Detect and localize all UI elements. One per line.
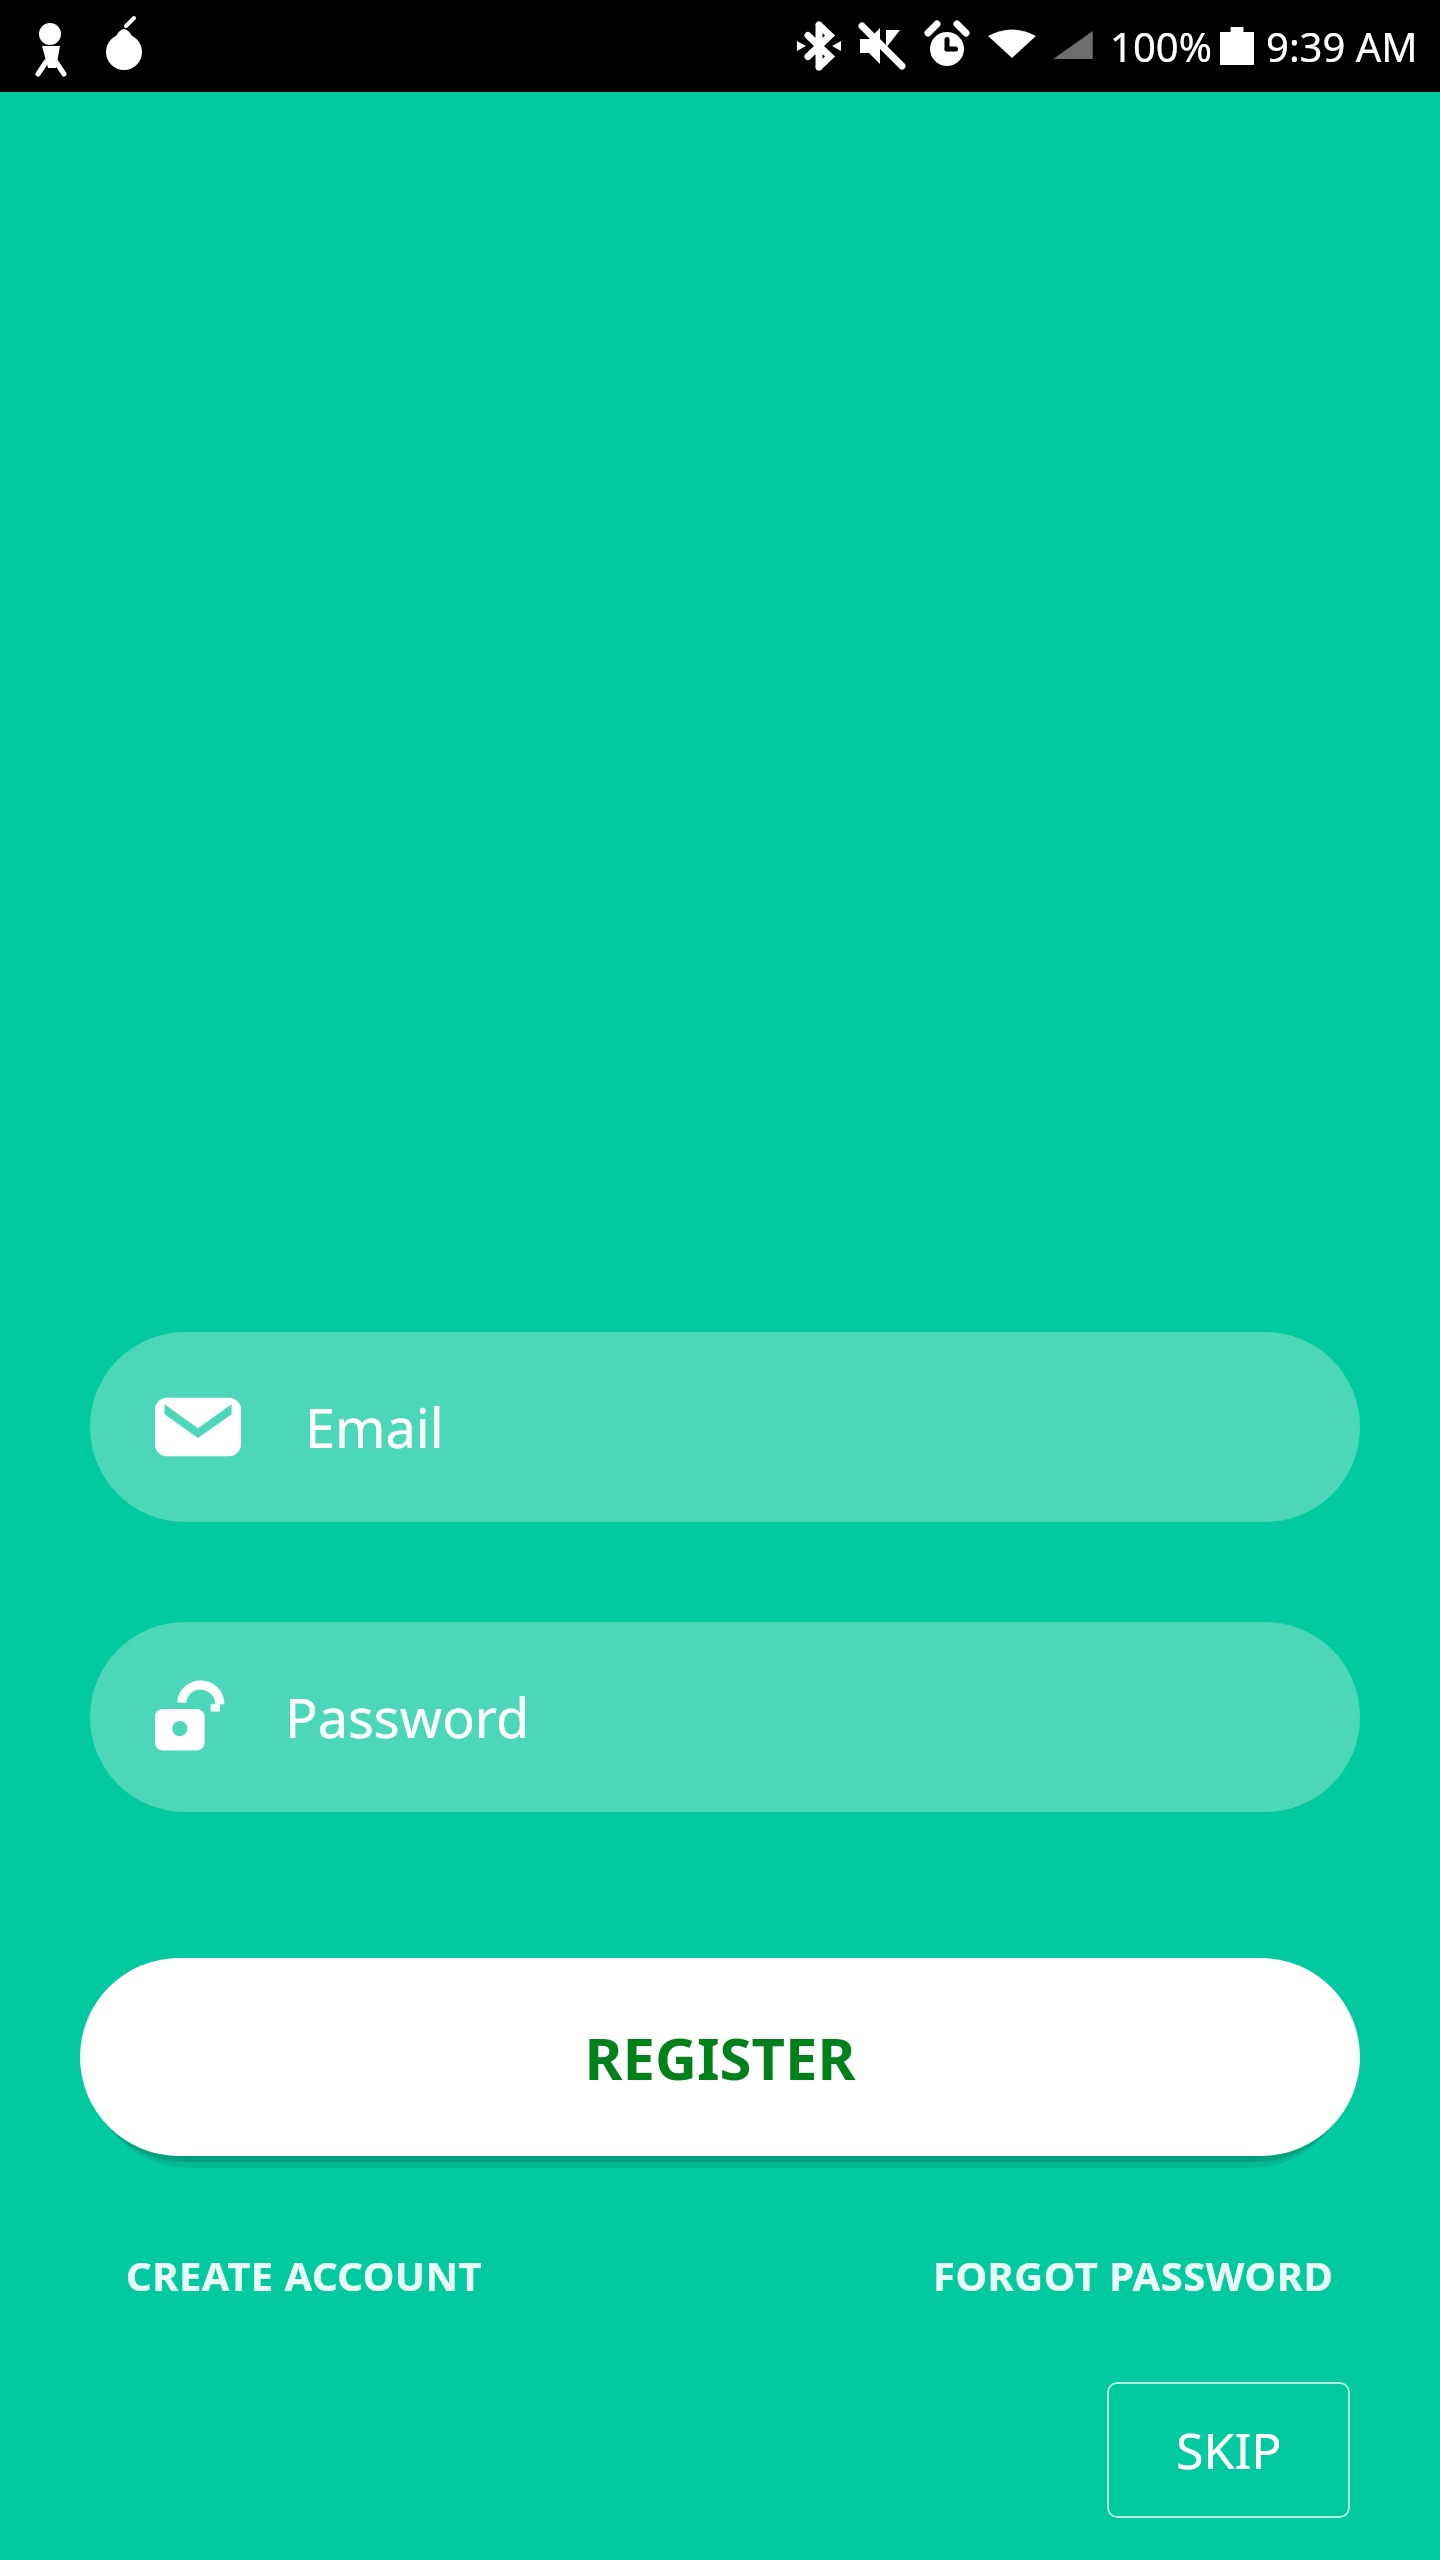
button[interactable]: SKIP xyxy=(1107,2382,1350,2518)
staticText: 9:39 AM xyxy=(1266,19,1418,73)
staticText: 100% xyxy=(1110,19,1212,73)
button[interactable]: Password xyxy=(90,1622,1360,1812)
staticText: SKIP xyxy=(1176,2416,1282,2484)
button[interactable]: Email xyxy=(90,1332,1360,1522)
staticText: Password xyxy=(285,1680,530,1754)
staticText: REGISTER xyxy=(584,2018,856,2097)
staticText: CREATE ACCOUNT xyxy=(126,2248,483,2302)
button[interactable]: REGISTER xyxy=(80,1958,1360,2156)
button[interactable]: FORGOT PASSWORD xyxy=(927,2238,1340,2312)
button[interactable]: CREATE ACCOUNT xyxy=(120,2238,489,2312)
staticText: Email xyxy=(305,1390,444,1464)
staticText: FORGOT PASSWORD xyxy=(933,2248,1334,2302)
